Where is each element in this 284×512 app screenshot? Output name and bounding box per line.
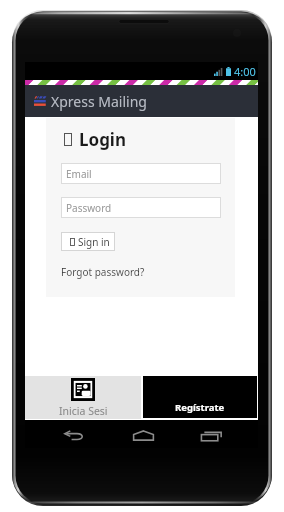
button[interactable]: Xpress Mailing: [25, 85, 258, 117]
button[interactable]: Back: [62, 420, 86, 448]
button[interactable]: Home: [131, 420, 155, 448]
staticText: Email: [66, 167, 92, 181]
staticText: Login: [79, 128, 127, 151]
staticText: Sign in: [78, 235, 110, 249]
button[interactable]: Inicia Sesi: [25, 376, 141, 419]
staticText: 4:00: [234, 64, 256, 79]
button[interactable]: Regístrate: [143, 376, 257, 418]
staticText: Inicia Sesi: [59, 404, 108, 418]
button[interactable]: Forgot password?: [61, 265, 145, 279]
button[interactable]: Sign in: [61, 232, 115, 251]
button[interactable]: Password: [61, 197, 221, 218]
button[interactable]: Recent apps: [199, 420, 223, 448]
staticText: Xpress Mailing: [51, 92, 147, 111]
button[interactable]: Email: [61, 163, 221, 184]
staticText: Password: [66, 201, 112, 215]
staticText: Regístrate: [175, 401, 225, 414]
